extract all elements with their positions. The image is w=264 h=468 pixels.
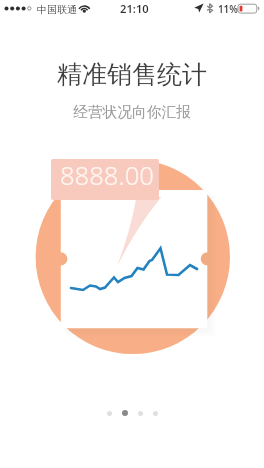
button[interactable] bbox=[153, 411, 158, 416]
staticText: 精准销售统计 bbox=[0, 59, 264, 90]
staticText: 21:10 bbox=[120, 1, 149, 16]
staticText: 经营状况向你汇报 bbox=[0, 103, 264, 122]
button[interactable] bbox=[107, 411, 112, 416]
staticText: 中国联通 bbox=[37, 3, 77, 16]
staticText: 8888.00 bbox=[60, 159, 154, 193]
button[interactable] bbox=[138, 411, 143, 416]
staticText: 11% bbox=[218, 3, 238, 16]
button[interactable] bbox=[122, 410, 128, 416]
